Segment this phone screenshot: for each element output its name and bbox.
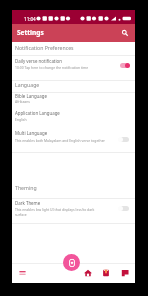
staticText: 10:00 Tap here to change the notificatio… [15,65,89,70]
staticText: Multi Language [15,130,48,136]
staticText: This enables low light UI that displays … [15,207,103,217]
staticText: English [15,117,27,122]
staticText: Settings [17,28,44,37]
staticText: Notification Preferences [15,44,74,51]
staticText: Dark Theme [15,200,41,206]
staticText: Language [15,81,40,88]
button[interactable]: Home [82,267,94,279]
button[interactable]: Bible [100,267,112,279]
staticText: Application Language [15,110,60,116]
staticText: 11:04 [24,16,36,22]
staticText: Bible Language [15,93,47,99]
staticText: This enables both Malayalam and English … [15,138,105,143]
button[interactable]: Bookmarks [119,267,131,279]
button[interactable]: Add note [63,254,80,271]
button[interactable]: Toggle [118,62,132,69]
button[interactable]: Menu [16,267,28,279]
staticText: Afrikaans [15,99,30,104]
button[interactable]: Toggle [118,136,132,143]
button[interactable]: Search [117,25,133,41]
staticText: Theming [15,184,37,191]
button[interactable]: Toggle [118,205,132,212]
staticText: Daily verse notification [15,58,62,64]
